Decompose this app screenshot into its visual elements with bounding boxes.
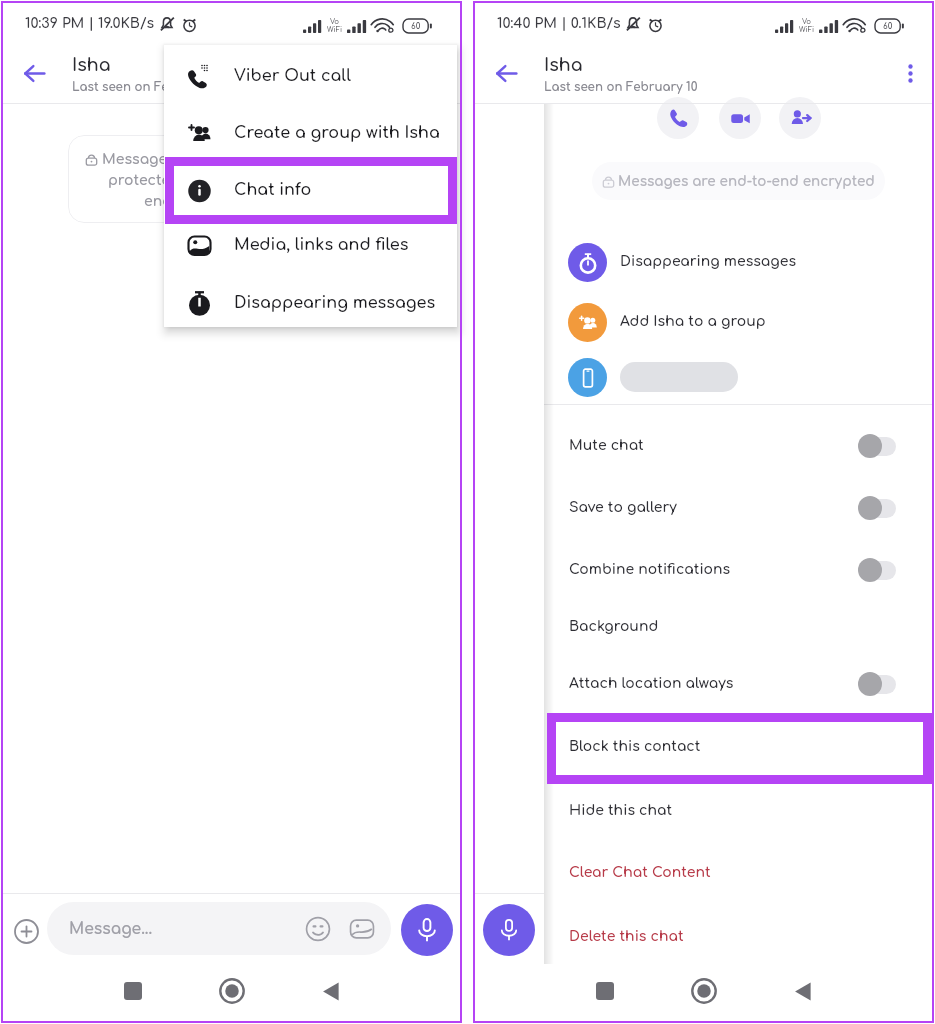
staticText: end-to-end — [144, 194, 227, 210]
button[interactable]: Clear Chat Content — [544, 847, 934, 899]
button[interactable]: Add attachment — [8, 913, 44, 949]
staticText: Vo — [802, 18, 812, 26]
button[interactable]: Back — [14, 53, 54, 93]
staticText: protected with — [108, 173, 214, 189]
staticText: 10:39 PM | 19.0KB/s — [25, 16, 155, 32]
staticText: WiFi — [327, 26, 343, 34]
staticText: Media, links and files — [234, 236, 409, 254]
staticText: Last seen on February 10 — [72, 81, 226, 94]
staticText: Messages are end-to-end encrypted — [618, 174, 875, 189]
staticText: Combine notifications — [569, 562, 731, 578]
staticText: 60 — [883, 22, 893, 31]
staticText: Vo — [330, 18, 340, 26]
button[interactable]: More options — [894, 57, 926, 89]
button[interactable]: Call — [657, 97, 699, 139]
staticText: Save to gallery — [569, 500, 677, 516]
button[interactable]: Disappearing messages — [164, 279, 457, 327]
staticText: Create a group with Isha — [234, 124, 440, 142]
button[interactable]: Add contact — [779, 97, 821, 139]
button[interactable]: Combine notifications — [544, 544, 934, 596]
button[interactable]: Background — [544, 601, 934, 653]
button[interactable]: Recents — [108, 966, 158, 1016]
button[interactable]: Messages are end-to-end encrypted — [592, 162, 885, 200]
button[interactable]: Create a group with Isha — [164, 109, 457, 157]
staticText: Last seen on February 10 — [544, 81, 698, 94]
staticText: Isha — [72, 56, 111, 76]
staticText: Disappearing messages — [234, 294, 436, 312]
staticText: Message... — [69, 920, 153, 937]
button[interactable]: Chat info — [164, 166, 457, 214]
button[interactable]: Attach location always — [544, 658, 934, 710]
button[interactable]: Message... — [47, 902, 391, 955]
staticText: Clear Chat Content — [569, 865, 711, 881]
button[interactable]: Mute chat — [544, 420, 934, 472]
staticText: 10:40 PM | 0.1KB/s — [497, 16, 621, 32]
button[interactable] — [544, 350, 934, 404]
staticText: Block this contact — [569, 739, 701, 755]
staticText: 60 — [411, 22, 421, 31]
button[interactable]: Home — [679, 966, 729, 1016]
button[interactable]: Block this contact — [544, 721, 934, 773]
button[interactable]: Record voice message — [483, 904, 535, 956]
staticText: Isha — [544, 56, 583, 76]
button[interactable]: Back — [486, 53, 526, 93]
button[interactable]: Hide this chat — [544, 785, 934, 837]
button[interactable]: Save to gallery — [544, 482, 934, 534]
staticText: Disappearing messages — [620, 254, 797, 270]
staticText: Mute chat — [569, 438, 644, 454]
staticText: Messages are — [102, 152, 204, 168]
staticText: Viber Out call — [234, 67, 351, 85]
button[interactable]: Delete this chat — [544, 911, 934, 963]
button[interactable]: Back — [306, 966, 356, 1016]
button[interactable]: Back — [778, 966, 828, 1016]
staticText: Attach location always — [569, 676, 734, 692]
staticText: Add Isha to a group — [620, 314, 766, 330]
button[interactable]: Media, links and files — [164, 221, 457, 269]
button[interactable]: Record voice message — [401, 904, 453, 956]
button[interactable]: Video call — [719, 97, 761, 139]
staticText: Chat info — [234, 181, 312, 199]
staticText: Delete this chat — [569, 929, 684, 945]
button[interactable]: Add Isha to a group — [544, 295, 934, 349]
button[interactable]: Disappearing messages — [544, 235, 934, 289]
button[interactable]: Recents — [580, 966, 630, 1016]
staticText: Hide this chat — [569, 803, 673, 819]
staticText: WiFi — [799, 26, 815, 34]
staticText: Background — [569, 619, 659, 635]
button[interactable]: Viber Out call — [164, 52, 457, 100]
button[interactable]: Home — [207, 966, 257, 1016]
